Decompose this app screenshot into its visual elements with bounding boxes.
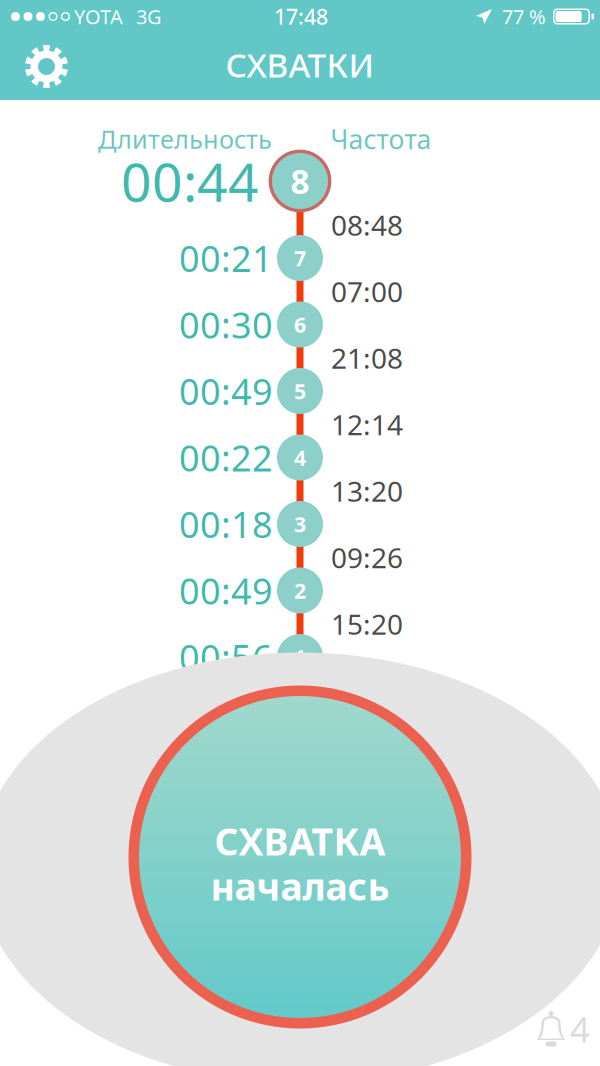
staticText: СХВАТКА (214, 816, 385, 866)
staticText: 4 (294, 443, 306, 472)
staticText: 6 (294, 310, 306, 339)
staticText: 8 (290, 159, 309, 203)
staticText: 4 (570, 1006, 590, 1052)
staticText: 07:00 (331, 273, 403, 310)
staticText: 77 % (502, 3, 546, 30)
staticText: 12:14 (331, 406, 403, 443)
staticText: 09:26 (331, 539, 403, 576)
staticText: началась (210, 861, 389, 911)
staticText: 00:49 (179, 567, 273, 614)
staticText: 00:30 (179, 301, 273, 348)
staticText: 3G (136, 3, 162, 30)
staticText: 21:08 (331, 339, 403, 377)
staticText: 00:56 (179, 633, 273, 681)
staticText: СХВАТКИ (225, 42, 374, 87)
staticText: 00:49 (179, 367, 273, 415)
staticText: 17:48 (274, 2, 328, 31)
staticText: 15:20 (331, 605, 403, 643)
staticText: 2 (294, 576, 306, 605)
staticText: 00:18 (179, 500, 273, 548)
button[interactable]: Settings (0, 34, 82, 99)
staticText: YOTA (74, 3, 123, 30)
staticText: 1 (294, 643, 306, 671)
staticText: 3 (294, 510, 306, 538)
staticText: 00:21 (179, 234, 273, 282)
staticText: 00:44 (121, 146, 259, 216)
staticText: 00:22 (179, 434, 273, 481)
staticText: Частота (330, 121, 431, 157)
staticText: Длительность (98, 122, 272, 156)
staticText: 7 (294, 244, 306, 272)
staticText: 5 (294, 377, 306, 405)
staticText: 08:48 (331, 206, 403, 244)
staticText: 13:20 (331, 472, 403, 510)
